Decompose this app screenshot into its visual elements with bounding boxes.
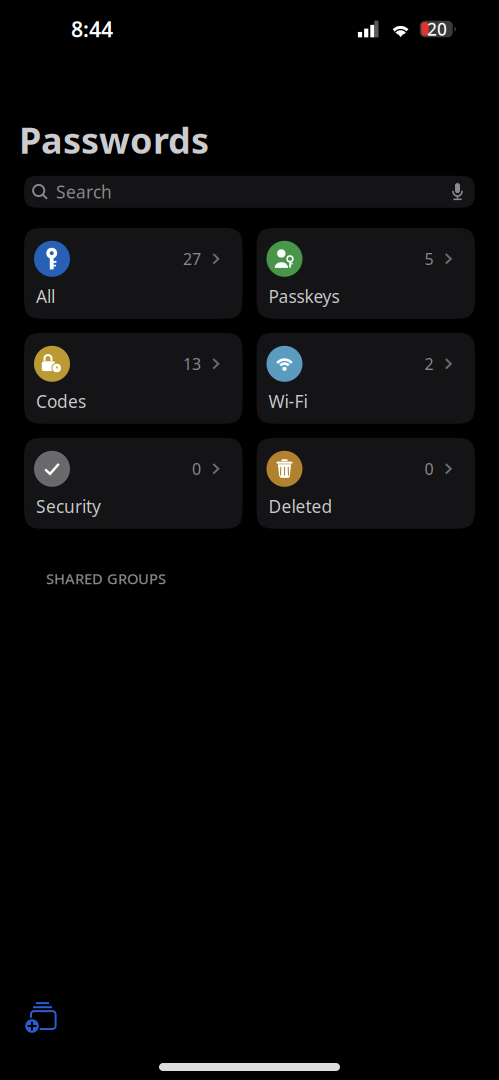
staticText: Search xyxy=(56,180,112,203)
staticText: 0 xyxy=(192,458,201,479)
button[interactable]: 0 xyxy=(256,438,475,529)
staticText: Wi-Fi xyxy=(268,390,307,413)
staticText: 2 xyxy=(425,353,434,374)
staticText: 5 xyxy=(425,248,434,269)
button[interactable]: 27 xyxy=(24,228,242,319)
staticText: 27 xyxy=(183,248,201,269)
button[interactable]: New Shared Group xyxy=(18,997,62,1041)
staticText: 8:44 xyxy=(71,15,113,43)
staticText: Passwords xyxy=(19,116,209,164)
button[interactable]: 13 xyxy=(24,333,242,424)
staticText: 13 xyxy=(183,353,201,374)
staticText: 20 xyxy=(427,17,447,40)
button[interactable]: 0 xyxy=(24,438,242,529)
staticText: SHARED GROUPS xyxy=(46,569,166,588)
button[interactable]: 2 xyxy=(256,333,475,424)
staticText: Deleted xyxy=(268,495,332,518)
staticText: 0 xyxy=(425,458,434,479)
button[interactable]: 5 xyxy=(256,228,475,319)
staticText: Security xyxy=(36,495,101,518)
staticText: Codes xyxy=(36,390,86,413)
staticText: All xyxy=(36,285,55,308)
staticText: Passkeys xyxy=(268,285,339,308)
